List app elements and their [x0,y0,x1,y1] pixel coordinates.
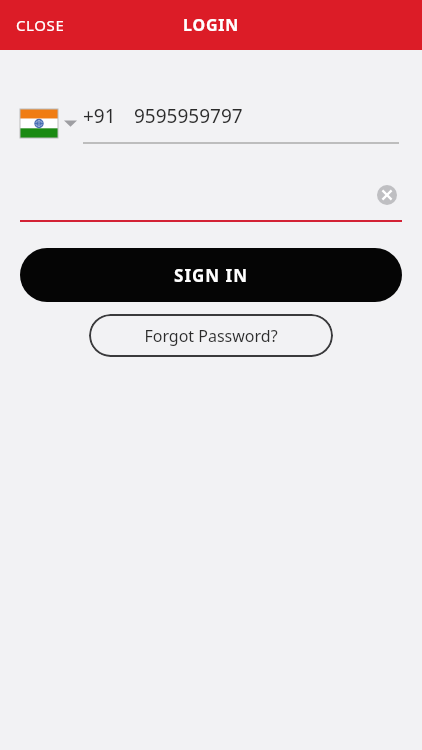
staticText: +91 [83,103,116,129]
button[interactable]: SIGN IN [20,248,402,302]
staticText: SIGN IN [174,264,248,287]
staticText: 9595959797 [134,103,243,129]
staticText: Forgot Password? [144,325,278,347]
button[interactable]: CLOSE [0,3,81,47]
button[interactable]: Clear password [372,180,402,210]
staticText: LOGIN [183,14,240,36]
button[interactable]: Select country code [20,109,77,138]
button[interactable]: Forgot Password? [89,314,333,357]
staticText: CLOSE [16,15,65,35]
